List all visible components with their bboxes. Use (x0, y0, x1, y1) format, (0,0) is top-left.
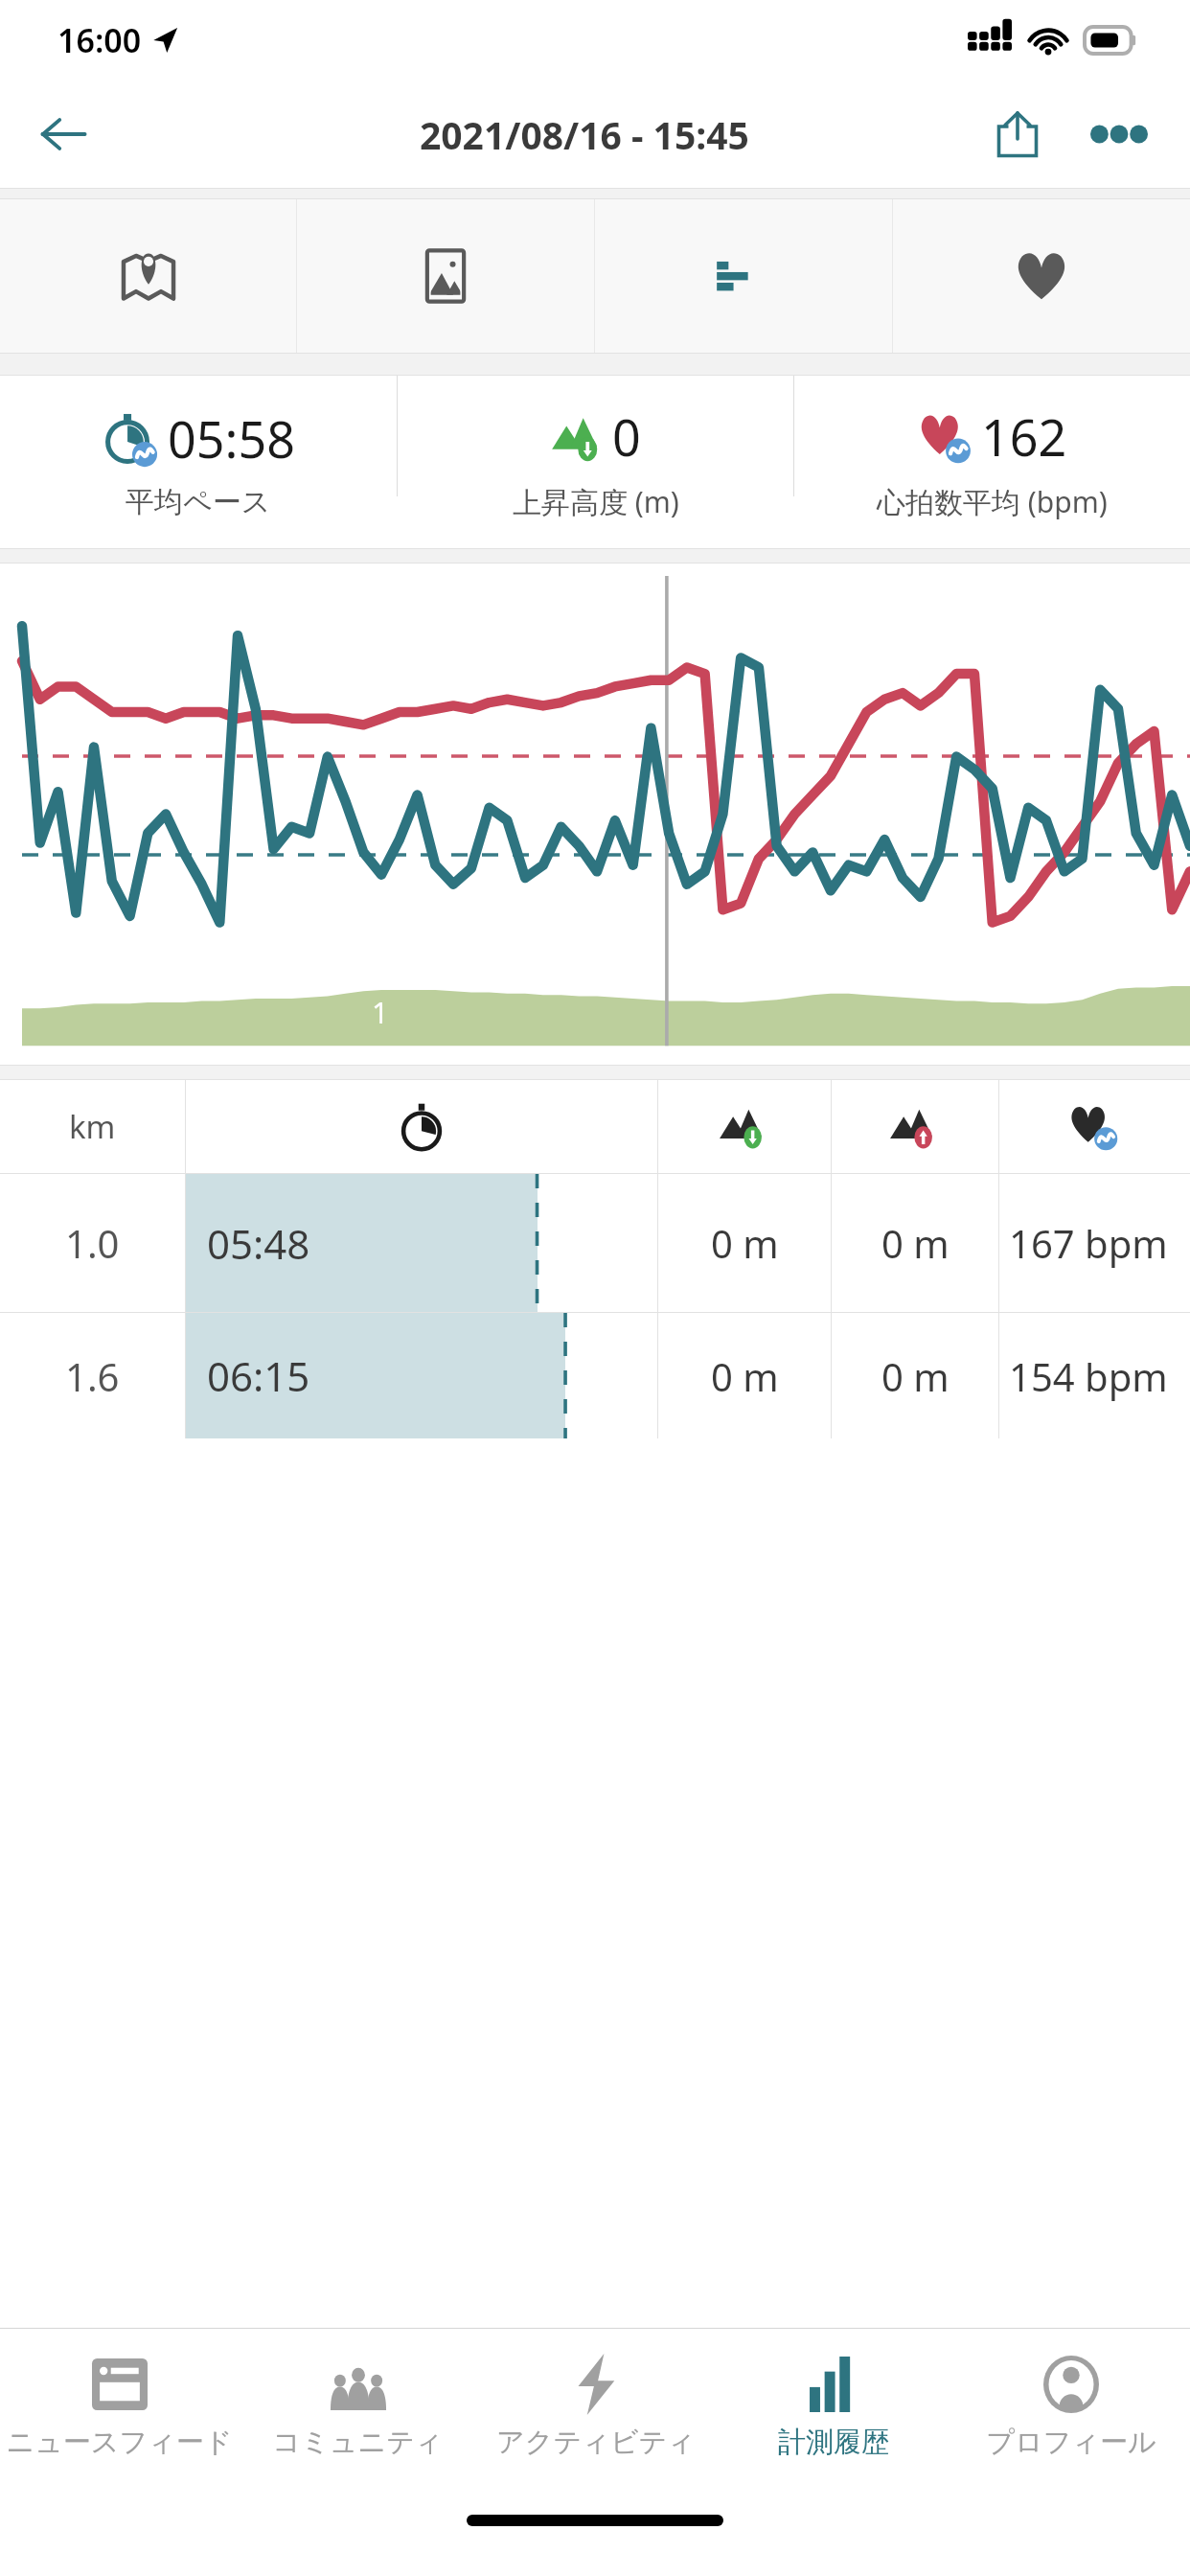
staticText: 上昇高度 (m) (513, 482, 679, 521)
button[interactable]: 162 (794, 376, 1190, 548)
staticText: 154 bpm (1009, 1350, 1168, 1402)
staticText: 0 m (881, 1350, 950, 1402)
staticText: 1.0 (65, 1217, 120, 1269)
button[interactable]: コミュニティ (239, 2329, 477, 2497)
staticText: 心拍数平均 (bpm) (877, 482, 1108, 521)
button[interactable]: ニュースフィード (0, 2329, 239, 2497)
staticText: プロフィール (986, 2425, 1156, 2460)
staticText: コミュニティ (272, 2425, 444, 2460)
staticText: 0 m (711, 1217, 779, 1269)
staticText: km (69, 1105, 116, 1148)
staticText: 0 m (881, 1217, 950, 1269)
button[interactable]: 0 (398, 376, 793, 548)
staticText: 162 (981, 402, 1067, 471)
staticText: アクティビティ (496, 2425, 696, 2460)
staticText: 06:15 (207, 1348, 310, 1403)
button[interactable]: Back (19, 90, 107, 178)
button[interactable]: プロフィール (952, 2329, 1190, 2497)
staticText: 1.6 (65, 1350, 120, 1402)
staticText: 2021/08/16 - 15:45 (420, 109, 749, 160)
button[interactable]: 1.6 (0, 1313, 1190, 1438)
button[interactable]: Share (972, 88, 1064, 180)
staticText: 05:58 (168, 404, 295, 472)
staticText: 167 bpm (1009, 1217, 1168, 1269)
staticText: 05:48 (207, 1216, 310, 1271)
button[interactable]: Photos (297, 199, 594, 353)
button[interactable]: アクティビティ (477, 2329, 715, 2497)
button[interactable]: 05:58 (0, 376, 397, 548)
staticText: 平均ペース (126, 484, 271, 520)
button[interactable]: More options (1073, 88, 1165, 180)
button[interactable]: Heart rate (893, 199, 1190, 353)
staticText: 計測履歴 (778, 2425, 889, 2460)
staticText: 16:00 (57, 18, 142, 62)
button[interactable]: 計測履歴 (715, 2329, 952, 2497)
button[interactable]: 1.0 (0, 1174, 1190, 1312)
staticText: ニュースフィード (6, 2425, 233, 2460)
staticText: 1 (372, 992, 389, 1032)
button[interactable]: Charts (595, 199, 892, 353)
staticText: 0 (612, 402, 641, 471)
button[interactable]: Map (0, 199, 296, 353)
staticText: 0 m (711, 1350, 779, 1402)
